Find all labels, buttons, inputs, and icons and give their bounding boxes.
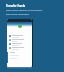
button[interactable] <box>7 19 32 67</box>
staticText: Send money instantly to any account with… <box>6 9 43 15</box>
staticText: Transfer Funds <box>6 4 26 8</box>
